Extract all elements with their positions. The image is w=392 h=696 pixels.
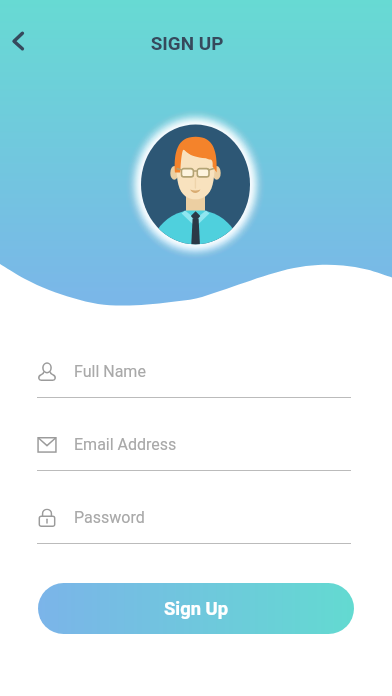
staticText: Password: [74, 508, 145, 527]
button[interactable]: Back: [0, 20, 36, 64]
staticText: Sign Up: [164, 598, 229, 620]
button[interactable]: Password: [37, 500, 351, 544]
button[interactable]: Full Name: [37, 354, 351, 398]
staticText: SIGN UP: [9, 32, 365, 54]
staticText: Email Address: [74, 435, 177, 454]
button[interactable]: Sign Up: [38, 583, 354, 634]
staticText: Full Name: [74, 362, 146, 381]
button[interactable]: Email Address: [37, 427, 351, 471]
